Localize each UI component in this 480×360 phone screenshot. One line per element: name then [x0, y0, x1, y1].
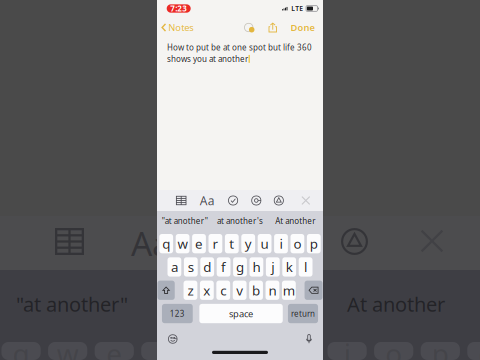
staticText: k: [286, 258, 293, 276]
button[interactable]: t: [225, 234, 239, 253]
staticText: o: [385, 335, 402, 360]
staticText: w: [57, 335, 79, 360]
staticText: i: [344, 335, 351, 360]
staticText: o: [293, 235, 301, 252]
staticText: n: [268, 281, 276, 299]
staticText: y: [247, 335, 261, 360]
button[interactable]: return: [288, 304, 318, 323]
button[interactable]: c: [216, 281, 230, 300]
staticText: h: [252, 258, 260, 276]
button[interactable]: q: [159, 234, 173, 253]
staticText: Done: [290, 21, 314, 34]
staticText: Aa: [131, 221, 171, 265]
staticText: Notes: [168, 21, 193, 34]
button[interactable]: w: [176, 234, 189, 253]
button[interactable]: Notes: [161, 17, 193, 38]
button[interactable]: space: [199, 304, 283, 323]
staticText: u: [292, 335, 309, 360]
button[interactable]: z: [184, 281, 197, 300]
button[interactable]: v: [233, 281, 247, 300]
button[interactable]: Done: [290, 17, 314, 38]
staticText: "at another": [16, 291, 128, 317]
button[interactable]: a: [167, 257, 181, 277]
staticText: LTE: [291, 4, 303, 13]
button[interactable]: Share: [268, 22, 277, 32]
button[interactable]: Dictate: [306, 334, 312, 344]
button[interactable]: f: [217, 257, 230, 277]
button[interactable]: Dismiss keyboard: [298, 190, 314, 211]
staticText: u: [261, 235, 269, 252]
staticText: d: [203, 258, 211, 276]
button[interactable]: Attach media: [248, 190, 264, 211]
staticText: t: [229, 235, 234, 252]
button[interactable]: 123: [162, 304, 193, 323]
staticText: 7:23: [170, 3, 187, 14]
staticText: s: [188, 258, 194, 276]
staticText: g: [236, 258, 244, 276]
staticText: at another's: [217, 216, 263, 226]
button[interactable]: j: [266, 257, 280, 277]
button[interactable]: i: [274, 234, 288, 253]
staticText: b: [252, 281, 260, 299]
button[interactable]: at another's: [212, 211, 268, 231]
staticText: shows you at another: [167, 54, 248, 64]
button[interactable]: "at another": [157, 211, 212, 231]
staticText: q: [13, 335, 30, 360]
button[interactable]: u: [258, 234, 271, 253]
button[interactable]: y: [241, 234, 255, 253]
staticText: p: [310, 235, 318, 252]
staticText: c: [220, 281, 226, 299]
staticText: m: [283, 281, 295, 299]
staticText: f: [221, 258, 226, 276]
button[interactable]: Checklist: [225, 190, 241, 211]
button[interactable]: Emoji: [168, 334, 177, 344]
button[interactable]: r: [208, 234, 222, 253]
button[interactable]: h: [249, 257, 263, 277]
button[interactable]: Collaborate: [244, 22, 254, 32]
staticText: e: [195, 235, 203, 252]
staticText: p: [432, 335, 449, 360]
button[interactable]: o: [290, 234, 304, 253]
staticText: w: [178, 235, 188, 252]
staticText: l: [304, 258, 307, 276]
staticText: Aa: [200, 192, 215, 208]
staticText: q: [478, 335, 480, 360]
button[interactable]: Table: [173, 190, 189, 211]
staticText: e: [106, 335, 122, 360]
button[interactable]: b: [249, 281, 263, 300]
button[interactable]: p: [307, 234, 321, 253]
staticText: q: [162, 235, 170, 252]
button[interactable]: Markup: [271, 190, 287, 211]
button[interactable]: g: [233, 257, 247, 277]
button[interactable]: l: [299, 257, 312, 277]
staticText: x: [203, 281, 210, 299]
staticText: z: [187, 281, 193, 299]
button[interactable]: Aa: [199, 190, 215, 211]
staticText: "at another": [162, 216, 208, 226]
button[interactable]: Delete: [305, 281, 323, 300]
button[interactable]: s: [184, 257, 198, 277]
staticText: v: [236, 281, 243, 299]
staticText: r: [212, 235, 218, 252]
button[interactable]: x: [200, 281, 214, 300]
staticText: At another: [347, 291, 445, 317]
staticText: i: [279, 235, 282, 252]
staticText: y: [245, 235, 252, 252]
staticText: 123: [170, 308, 185, 319]
staticText: a: [171, 258, 178, 276]
button[interactable]: Shift: [157, 281, 175, 300]
staticText: r: [155, 335, 167, 360]
button[interactable]: e: [192, 234, 206, 253]
button[interactable]: d: [200, 257, 214, 277]
staticText: space: [229, 307, 253, 320]
staticText: return: [291, 308, 315, 319]
button[interactable]: m: [282, 281, 296, 300]
staticText: At another: [275, 216, 315, 226]
button[interactable]: k: [282, 257, 296, 277]
button[interactable]: At another: [268, 211, 323, 231]
staticText: How to put be at one spot but life 360: [167, 42, 312, 53]
button[interactable]: n: [266, 281, 279, 300]
staticText: j: [271, 258, 274, 276]
